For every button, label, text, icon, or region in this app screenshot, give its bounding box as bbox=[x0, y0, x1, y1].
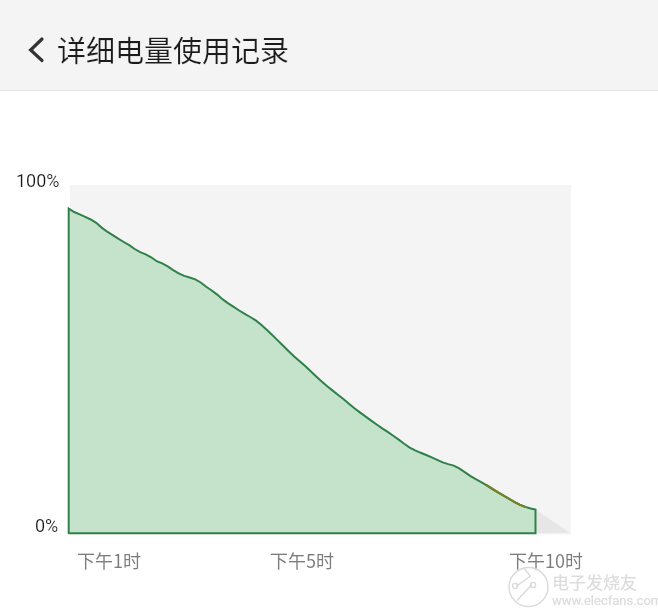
staticText: 详细电量使用记录 bbox=[57, 28, 290, 70]
staticText: www.elecfans.com bbox=[552, 593, 658, 608]
staticText: 下午5时 bbox=[270, 547, 334, 573]
staticText: 下午1时 bbox=[77, 547, 141, 573]
staticText: 0% bbox=[35, 515, 59, 536]
button[interactable]: Back bbox=[0, 0, 57, 90]
staticText: 电子发烧友 bbox=[552, 569, 637, 594]
staticText: 100% bbox=[16, 170, 60, 191]
staticText: 下午10时 bbox=[509, 547, 583, 573]
